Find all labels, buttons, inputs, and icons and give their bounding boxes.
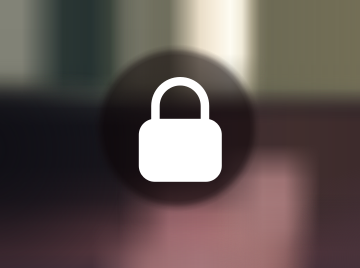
button[interactable]: Content locked [0, 0, 360, 268]
